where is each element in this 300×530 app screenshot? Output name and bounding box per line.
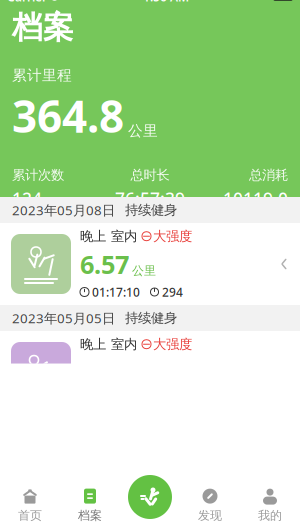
staticText: 晚上 [80, 228, 106, 244]
staticText: Carrier [7, 0, 47, 5]
staticText: 档案 [12, 9, 74, 46]
staticText: 294 [162, 284, 183, 300]
staticText: 5.25 [80, 463, 129, 497]
staticText: 晚上 [80, 336, 106, 352]
staticText: 室内 [111, 228, 137, 244]
staticText: 累计里程 [12, 66, 72, 84]
button[interactable]: 开始运动 [125, 472, 175, 522]
staticText: 大强度 [153, 336, 192, 352]
staticText: 公里 [128, 122, 158, 140]
staticText: 我的 [258, 508, 282, 523]
staticText: 首页 [18, 508, 42, 523]
staticText: 76:57:39 [115, 187, 185, 210]
staticText: 大强度 [153, 228, 192, 244]
staticText: 发现 [198, 508, 222, 523]
staticText: 01:17:10 [92, 284, 140, 300]
staticText: 总时长 [130, 167, 169, 183]
button[interactable]: 晚上 [0, 439, 300, 521]
staticText: 持续健身 [125, 310, 177, 326]
button[interactable]: 档案 [60, 481, 120, 529]
staticText: 室内 [111, 336, 137, 352]
staticText: 124 [12, 187, 42, 210]
button[interactable]: 晚上 [0, 223, 300, 305]
staticText: 2023年05月08日 [12, 201, 115, 219]
staticText: 档案 [78, 508, 102, 523]
staticText: 6.57 [80, 247, 129, 281]
button[interactable]: 首页 [0, 481, 60, 529]
staticText: 公里 [132, 263, 156, 278]
staticText: 累计次数 [12, 167, 64, 183]
staticText: 2023年05月05日 [12, 309, 115, 327]
staticText: 10119.0 [223, 187, 288, 210]
button[interactable]: 晚上 [0, 331, 300, 413]
button[interactable]: 我的 [240, 481, 300, 529]
staticText: 364.8 [12, 86, 124, 145]
staticText: 1:56 AM [143, 0, 189, 5]
staticText: 持续健身 [125, 202, 177, 218]
button[interactable]: 发现 [180, 481, 240, 529]
staticText: 01:02:11 [92, 500, 140, 516]
staticText: 总消耗 [249, 167, 288, 183]
staticText: 公里 [132, 479, 156, 494]
staticText: 331 [162, 500, 183, 516]
